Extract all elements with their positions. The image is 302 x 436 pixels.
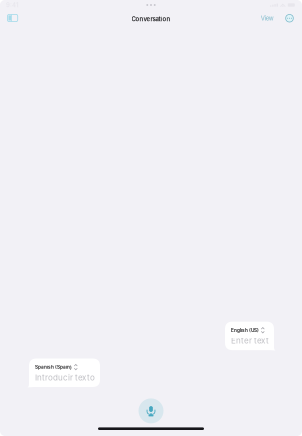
button[interactable]: More options [282, 11, 297, 27]
staticText: Spanish (Spain) [35, 364, 72, 370]
staticText: English (US) [231, 327, 259, 333]
button[interactable]: Record [138, 398, 163, 423]
button[interactable]: Spanish (Spain) [29, 358, 100, 387]
staticText: View [261, 15, 274, 22]
button[interactable]: View [258, 12, 277, 26]
staticText: Conversation [131, 15, 170, 23]
staticText: Introducir texto [35, 373, 95, 382]
staticText: Enter text [231, 336, 269, 345]
button[interactable]: Show Sidebar [3, 11, 22, 27]
button[interactable]: English (US) [225, 322, 274, 350]
